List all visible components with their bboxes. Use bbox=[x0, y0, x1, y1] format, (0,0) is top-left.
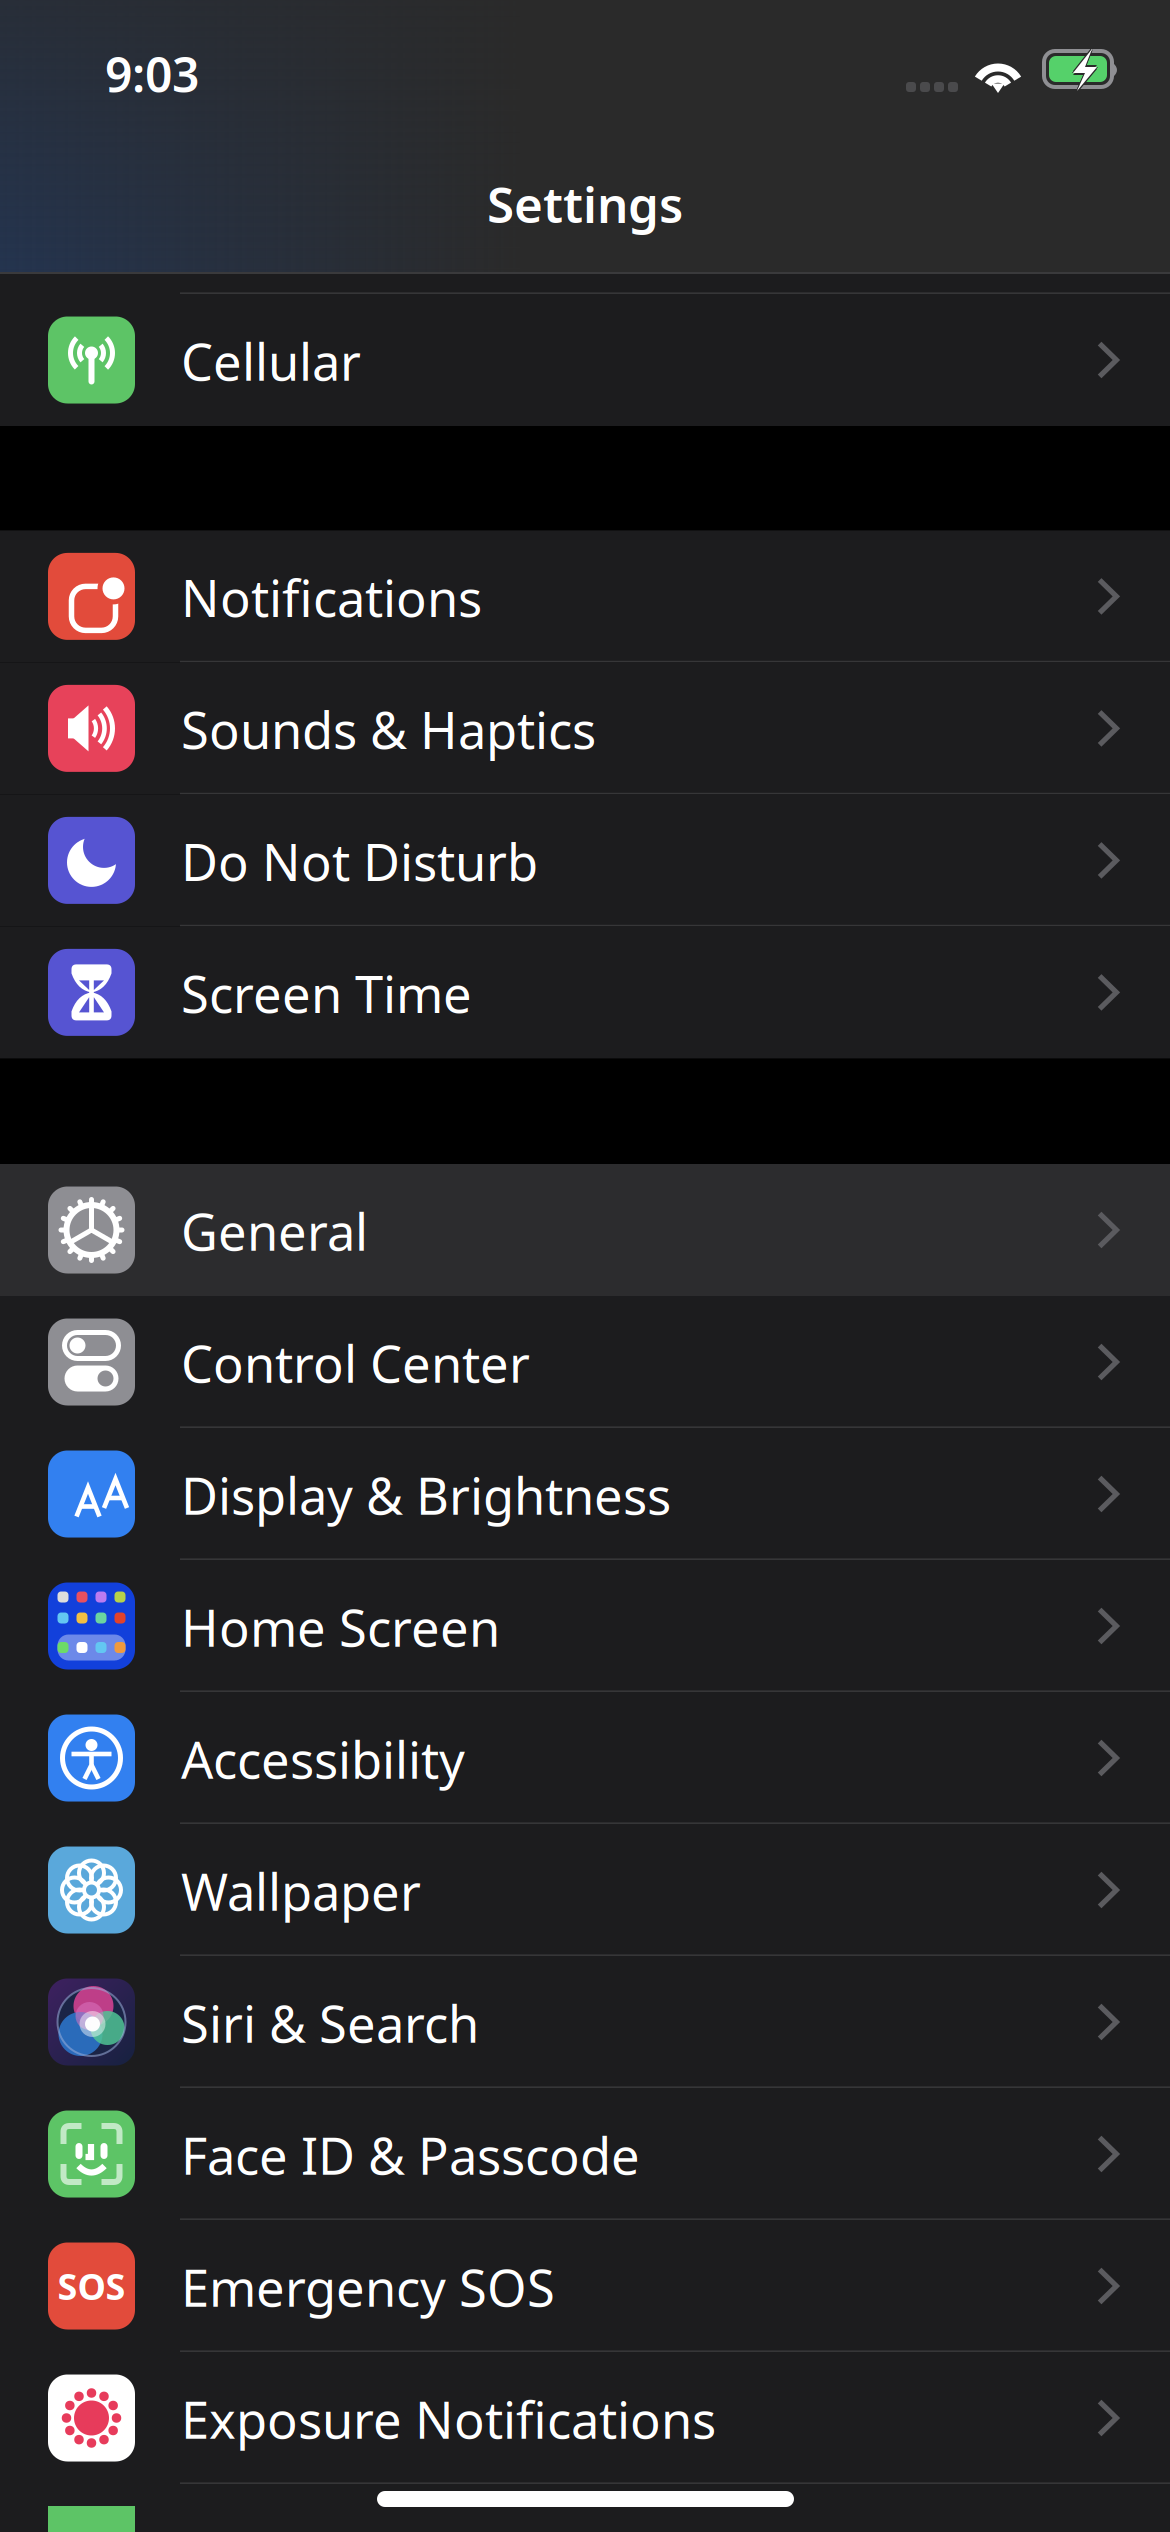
staticText: Control Center bbox=[181, 1329, 530, 1397]
staticText: Notifications bbox=[181, 564, 482, 631]
button[interactable]: Exposure Notifications bbox=[0, 2352, 1170, 2484]
staticText: Home Screen bbox=[181, 1593, 500, 1661]
staticText: Sounds & Haptics bbox=[181, 696, 596, 763]
button[interactable]: Face ID & Passcode bbox=[0, 2088, 1170, 2220]
button[interactable]: Accessibility bbox=[0, 1692, 1170, 1824]
staticText: 9:03 bbox=[105, 42, 199, 106]
staticText: Cellular bbox=[181, 327, 361, 395]
button[interactable]: Wallpaper bbox=[0, 1824, 1170, 1956]
staticText: Siri & Search bbox=[181, 1989, 479, 2057]
button[interactable]: Sounds & Haptics bbox=[0, 662, 1170, 794]
staticText: General bbox=[181, 1197, 368, 1265]
button[interactable]: SOS bbox=[0, 2220, 1170, 2352]
staticText: Emergency SOS bbox=[181, 2253, 555, 2321]
button[interactable]: Notifications bbox=[0, 530, 1170, 662]
button[interactable]: Control Center bbox=[0, 1296, 1170, 1428]
button[interactable]: Do Not Disturb bbox=[0, 794, 1170, 926]
staticText: Do Not Disturb bbox=[181, 828, 538, 895]
staticText: Settings bbox=[487, 171, 683, 236]
button[interactable]: Cellular bbox=[0, 294, 1170, 426]
button[interactable]: Display & Brightness bbox=[0, 1428, 1170, 1560]
staticText: Accessibility bbox=[181, 1725, 465, 1793]
staticText: Screen Time bbox=[181, 960, 472, 1027]
button[interactable]: Siri & Search bbox=[0, 1956, 1170, 2088]
staticText: Face ID & Passcode bbox=[181, 2121, 640, 2189]
button[interactable]: Screen Time bbox=[0, 926, 1170, 1058]
staticText: Display & Brightness bbox=[181, 1461, 671, 1529]
staticText: Exposure Notifications bbox=[181, 2385, 716, 2453]
button[interactable]: General bbox=[0, 1164, 1170, 1296]
button[interactable]: Home Screen bbox=[0, 1560, 1170, 1692]
staticText: Wallpaper bbox=[181, 1857, 421, 1925]
staticText: SOS bbox=[57, 2262, 125, 2310]
